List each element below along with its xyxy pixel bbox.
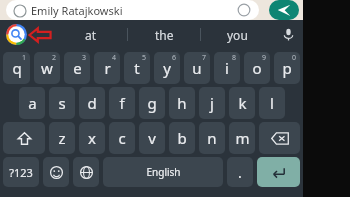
button[interactable] (257, 157, 300, 187)
staticText: g (147, 93, 157, 113)
button[interactable]: y (154, 52, 180, 84)
button[interactable]: English (103, 157, 223, 187)
button[interactable]: r (94, 52, 120, 84)
button[interactable]: h (169, 87, 195, 119)
staticText: 7 (202, 53, 207, 63)
staticText: x (88, 128, 96, 148)
staticText: you (227, 27, 248, 43)
staticText: q (12, 58, 22, 78)
button[interactable]: n (199, 122, 225, 154)
staticText: a (28, 93, 37, 113)
staticText: b (177, 128, 187, 148)
staticText: 3 (82, 53, 87, 63)
button[interactable]: s (49, 87, 75, 119)
button[interactable]: z (49, 122, 75, 154)
staticText: v (148, 128, 156, 148)
staticText: 0 (292, 53, 297, 63)
button[interactable]: l (259, 87, 285, 119)
staticText: w (41, 58, 53, 78)
button[interactable]: g (139, 87, 165, 119)
staticText: y (163, 58, 171, 78)
button[interactable]: i (214, 52, 240, 84)
button[interactable]: Voice input (273, 20, 303, 49)
button[interactable]: e (64, 52, 90, 84)
button[interactable]: q (3, 52, 30, 84)
staticText: s (58, 93, 66, 113)
staticText: 1 (22, 53, 27, 63)
button[interactable]: k (229, 87, 255, 119)
staticText: r (104, 58, 111, 78)
staticText: f (119, 93, 125, 113)
staticText: ?123 (9, 165, 33, 180)
button[interactable] (259, 122, 300, 154)
button[interactable]: p (274, 52, 300, 84)
button[interactable]: j (199, 87, 225, 119)
button[interactable]: a (19, 87, 45, 119)
button[interactable]: m (229, 122, 255, 154)
staticText: at (85, 27, 97, 43)
staticText: k (238, 93, 247, 113)
button[interactable]: u (184, 52, 210, 84)
staticText: n (207, 128, 217, 148)
button[interactable] (43, 157, 69, 187)
staticText: m (235, 128, 250, 148)
staticText: d (87, 93, 97, 113)
button[interactable]: x (79, 122, 105, 154)
staticText: 5 (142, 53, 147, 63)
button[interactable]: w (34, 52, 60, 84)
button[interactable]: t (124, 52, 150, 84)
button[interactable]: b (169, 122, 195, 154)
button[interactable]: Google search (6, 24, 27, 45)
button[interactable]: Emily Ratajkowski (6, 0, 259, 20)
button[interactable]: Send (269, 0, 299, 20)
staticText: u (192, 58, 202, 78)
button[interactable]: you (201, 20, 273, 49)
button[interactable]: c (109, 122, 135, 154)
staticText: Emily Ratajkowski (31, 3, 123, 18)
staticText: l (270, 93, 274, 113)
button[interactable]: o (244, 52, 270, 84)
staticText: p (282, 58, 292, 78)
button[interactable]: . (227, 157, 253, 187)
staticText: 9 (262, 53, 267, 63)
staticText: t (134, 58, 140, 78)
button[interactable]: Attach (237, 3, 251, 17)
staticText: h (177, 93, 187, 113)
staticText: 2 (52, 53, 57, 63)
button[interactable] (3, 122, 45, 154)
staticText: j (210, 93, 214, 113)
button[interactable]: ?123 (3, 157, 39, 187)
button[interactable]: at (55, 20, 127, 49)
staticText: the (155, 27, 174, 43)
staticText: c (118, 128, 126, 148)
staticText: e (73, 58, 82, 78)
staticText: o (252, 58, 262, 78)
staticText: z (58, 128, 66, 148)
staticText: 6 (172, 53, 177, 63)
staticText: 8 (232, 53, 237, 63)
button[interactable]: f (109, 87, 135, 119)
staticText: 4 (112, 53, 117, 63)
button[interactable]: d (79, 87, 105, 119)
button[interactable]: v (139, 122, 165, 154)
button[interactable]: the (128, 20, 200, 49)
button[interactable] (73, 157, 99, 187)
staticText: i (225, 58, 229, 78)
staticText: . (238, 163, 242, 182)
staticText: English (146, 165, 181, 179)
